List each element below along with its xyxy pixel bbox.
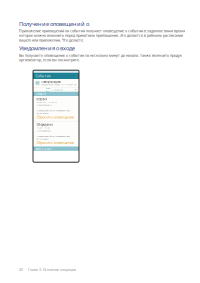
button[interactable]: Обсуждение xyxy=(33,122,79,146)
staticText: Глава 3. Основные операции xyxy=(28,268,76,272)
staticText: которое можно изменить перед принятием п… xyxy=(19,33,183,38)
staticText: Переговорная 3 xyxy=(36,103,51,106)
staticText: 9:00 AM xyxy=(46,86,50,93)
button[interactable]: Планёрка отдела xyxy=(33,79,79,92)
staticText: Планёрка отдела xyxy=(41,80,60,84)
staticText: 40 xyxy=(19,268,23,272)
staticText: 13:30 – 14:00 xyxy=(36,126,49,129)
staticText: ⋮ xyxy=(74,74,77,78)
staticText: Приложение приглашений на события получа… xyxy=(19,28,185,33)
button[interactable]: Встреча xyxy=(33,96,79,121)
staticText: Завтра xyxy=(35,147,42,150)
staticText: Сбросить оповещение xyxy=(36,114,74,120)
staticText: — xyxy=(51,88,53,91)
staticText: Оповещение было отправлено вам xyxy=(36,109,70,112)
button[interactable]: События xyxy=(33,73,79,79)
staticText: Получение оповещений о xyxy=(19,20,89,28)
staticText: Уведомление придёт за 15 минут до xyxy=(41,83,76,86)
staticText: События xyxy=(36,74,51,78)
staticText: у руководителя xyxy=(36,129,50,132)
staticText: за 15 минут xyxy=(36,137,48,140)
staticText: за 30 минут xyxy=(36,112,48,115)
staticText: Сбросить оповещение xyxy=(36,140,74,145)
staticText: Уведомления о входе xyxy=(19,44,75,52)
staticText: организатор, если вы посмотрите. xyxy=(19,57,80,62)
staticText: Оповещение было отправлено вам xyxy=(36,134,70,138)
staticText: ✕ xyxy=(75,88,77,91)
staticText: 10:00 AM xyxy=(54,88,63,91)
staticText: вашего или приложении. Что делаете. xyxy=(19,38,84,42)
staticText: Встреча xyxy=(36,97,46,101)
staticText: среда xyxy=(44,147,51,150)
staticText: Вы получаете оповещение о событии за нес… xyxy=(19,53,182,58)
staticText: 10:00 AM – 11:00 AM xyxy=(36,101,57,104)
staticText: Сегодня xyxy=(35,92,45,96)
staticText: Обсуждение xyxy=(36,123,52,127)
